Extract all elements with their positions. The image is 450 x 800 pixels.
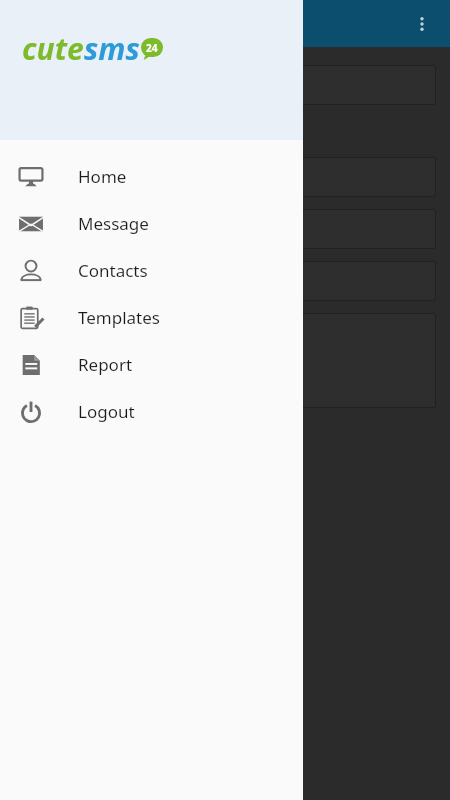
staticText: Character Count : 0 xyxy=(14,422,150,442)
button[interactable] xyxy=(14,65,436,105)
staticText: Logout xyxy=(78,400,135,423)
button[interactable] xyxy=(14,313,436,408)
button[interactable]: Home xyxy=(0,153,303,200)
staticText: Home xyxy=(78,165,127,188)
staticText: sms xyxy=(84,28,140,69)
button[interactable]: Contacts xyxy=(0,247,303,294)
button[interactable] xyxy=(14,261,436,301)
button[interactable] xyxy=(14,157,436,197)
button[interactable]: More options xyxy=(404,6,440,42)
staticText: Message xyxy=(78,212,149,235)
button[interactable]: Report xyxy=(0,341,303,388)
staticText: Report xyxy=(78,353,133,376)
button[interactable]: Message xyxy=(0,200,303,247)
staticText: Contacts xyxy=(78,259,148,282)
button[interactable]: Templates xyxy=(0,294,303,341)
button[interactable]: Logout xyxy=(0,388,303,435)
staticText: 24 xyxy=(146,41,158,55)
button[interactable] xyxy=(14,209,436,249)
staticText: Templates xyxy=(78,306,160,329)
staticText: cute xyxy=(22,28,84,69)
